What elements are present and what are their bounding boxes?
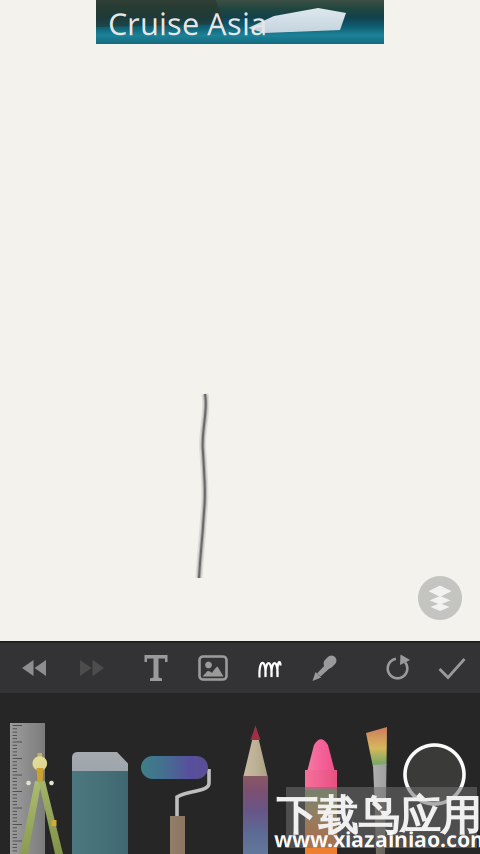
button[interactable]: Done (424, 642, 480, 694)
button[interactable]: Insert photo (187, 642, 239, 694)
staticText: 下载鸟应用 (276, 791, 480, 841)
button[interactable]: Compass (7, 763, 77, 854)
staticText: Cruise Asia (108, 3, 267, 44)
button[interactable]: Layers (418, 576, 462, 620)
button[interactable]: Crayon (305, 736, 337, 854)
button[interactable]: Cruise Asia advertisement (96, 0, 384, 44)
button[interactable]: Paint roller (141, 756, 213, 854)
staticText: www.xiazainiao.com (274, 825, 480, 853)
button[interactable]: Undo (5, 642, 63, 694)
button[interactable]: Eraser (72, 752, 128, 854)
button[interactable]: Ruler (10, 723, 45, 854)
button[interactable]: Eyedropper (299, 642, 351, 694)
button[interactable]: Current color (405, 745, 464, 804)
button[interactable]: Pencil (243, 726, 268, 854)
button[interactable]: Draw (244, 642, 296, 694)
button[interactable]: Reset (370, 642, 426, 694)
button[interactable]: Redo (63, 642, 121, 694)
button[interactable]: Paintbrush (366, 727, 389, 854)
button[interactable]: Text tool (130, 642, 182, 694)
